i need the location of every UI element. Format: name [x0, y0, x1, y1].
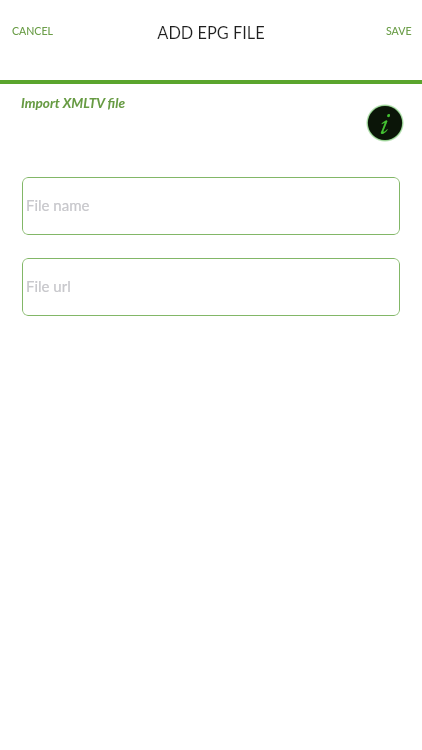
staticText: File name — [26, 196, 90, 214]
staticText: ADD EPG FILE — [0, 23, 422, 43]
staticText: Import XMLTV file — [21, 95, 126, 111]
button[interactable]: File url — [22, 258, 400, 316]
staticText: SAVE — [386, 25, 412, 38]
button[interactable]: CANCEL — [4, 18, 61, 45]
staticText: CANCEL — [12, 25, 53, 38]
staticText: File url — [26, 277, 71, 295]
button[interactable]: Information — [363, 101, 407, 145]
button[interactable]: File name — [22, 177, 400, 235]
staticText: i — [380, 103, 390, 143]
button[interactable]: SAVE — [378, 18, 420, 45]
